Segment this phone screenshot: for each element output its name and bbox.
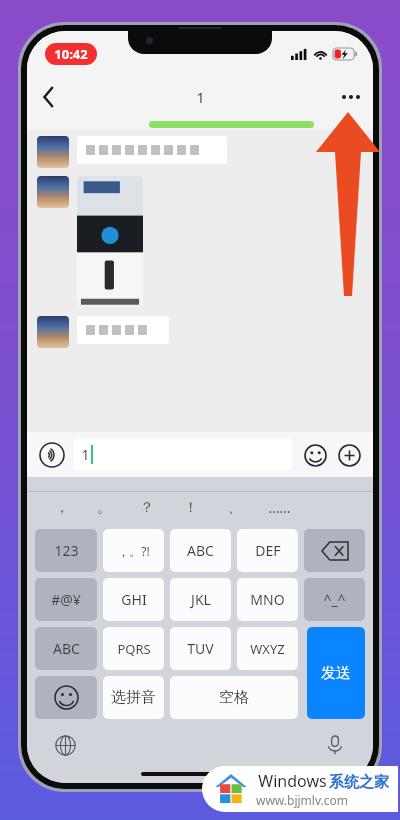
staticText: ，: [55, 499, 69, 517]
staticText: 系统之家: [329, 773, 389, 792]
staticText: 选拼音: [111, 688, 156, 707]
button[interactable]: Switch language: [51, 731, 79, 759]
button[interactable]: More functions: [335, 441, 363, 469]
staticText: 空格: [219, 688, 249, 707]
staticText: WXYZ: [250, 640, 285, 658]
staticText: GHI: [121, 590, 147, 609]
staticText: ……: [268, 498, 291, 517]
button[interactable]: 、: [213, 492, 257, 523]
button[interactable]: Avatar: [37, 176, 69, 208]
staticText: Windows: [256, 770, 329, 792]
button[interactable]: ABC: [35, 627, 97, 670]
button[interactable]: 1: [74, 439, 292, 470]
staticText: ^_^: [323, 590, 346, 609]
staticText: ！: [184, 499, 198, 517]
staticText: ？: [140, 499, 154, 517]
button[interactable]: [77, 316, 169, 344]
staticText: #@¥: [51, 590, 81, 609]
button[interactable]: More options: [329, 75, 373, 119]
button[interactable]: Backspace: [304, 529, 365, 572]
button[interactable]: JKL: [170, 578, 231, 621]
staticText: 发送: [321, 664, 351, 683]
button[interactable]: GHI: [103, 578, 164, 621]
staticText: 1: [196, 87, 205, 107]
button[interactable]: #@¥: [35, 578, 97, 621]
button[interactable]: ABC: [170, 529, 231, 572]
button[interactable]: [77, 136, 227, 164]
button[interactable]: Avatar: [37, 136, 69, 168]
staticText: 1: [81, 445, 90, 464]
staticText: DEF: [255, 541, 281, 560]
button[interactable]: Image message: [77, 176, 143, 308]
button[interactable]: DEF: [237, 529, 298, 572]
button[interactable]: Avatar: [37, 316, 69, 348]
staticText: ABC: [53, 639, 80, 658]
button[interactable]: Back: [27, 75, 71, 119]
staticText: 。: [97, 499, 111, 517]
staticText: MNO: [250, 590, 285, 609]
button[interactable]: MNO: [237, 578, 298, 621]
button[interactable]: 发送: [307, 627, 365, 719]
staticText: ，。?!: [117, 543, 150, 559]
staticText: PQRS: [117, 640, 151, 658]
button[interactable]: ？: [125, 492, 169, 523]
button[interactable]: Emoji keyboard: [35, 676, 97, 719]
staticText: JKL: [191, 590, 211, 609]
button[interactable]: WXYZ: [237, 627, 298, 670]
button[interactable]: PQRS: [103, 627, 164, 670]
button[interactable]: ……: [257, 492, 301, 523]
staticText: www.bjjmlv.com: [256, 792, 348, 808]
button[interactable]: 空格: [170, 676, 298, 719]
staticText: 123: [54, 541, 79, 560]
button[interactable]: ^_^: [304, 578, 365, 621]
staticText: TUV: [187, 639, 214, 658]
button[interactable]: ，: [41, 492, 83, 523]
button[interactable]: 123: [35, 529, 97, 572]
button[interactable]: Emoji: [301, 441, 329, 469]
button[interactable]: 选拼音: [103, 676, 164, 719]
staticText: 、: [228, 499, 242, 517]
button[interactable]: 。: [83, 492, 125, 523]
button[interactable]: Voice input: [37, 440, 67, 470]
button[interactable]: ，。?!: [103, 529, 164, 572]
staticText: ABC: [187, 541, 214, 560]
button[interactable]: TUV: [170, 627, 231, 670]
button[interactable]: Voice dictation: [321, 731, 349, 759]
staticText: 10:42: [54, 45, 88, 63]
button[interactable]: ！: [169, 492, 213, 523]
